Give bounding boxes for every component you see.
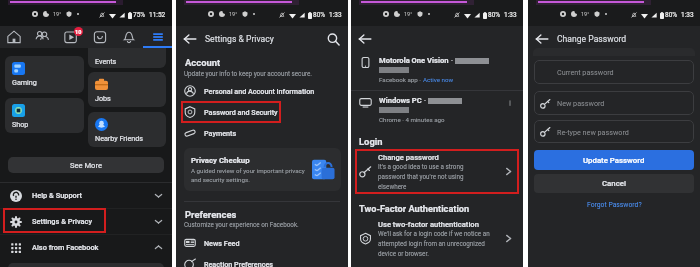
- button[interactable]: Windows PC: [359, 96, 515, 123]
- button[interactable]: See More: [8, 157, 164, 173]
- staticText: News Feed: [204, 239, 240, 247]
- staticText: Account: [185, 57, 221, 68]
- button[interactable]: Help & Support: [0, 183, 172, 208]
- button[interactable]: Marketplace: [85, 26, 114, 48]
- staticText: Payments: [204, 129, 237, 137]
- staticText: Use two-factor authentication: [378, 220, 479, 229]
- button[interactable]: Search: [327, 33, 340, 46]
- staticText: Jobs: [95, 94, 111, 102]
- staticText: Privacy Checkup: [191, 156, 250, 165]
- staticText: 11:52: [149, 11, 166, 19]
- button[interactable]: Payments: [184, 122, 356, 144]
- staticText: Login: [359, 136, 383, 147]
- staticText: Reaction Preferences: [204, 260, 274, 267]
- button[interactable]: Cancel: [534, 174, 694, 193]
- button[interactable]: Back: [183, 32, 197, 46]
- staticText: Preferences: [185, 209, 237, 220]
- staticText: 80%: [313, 11, 326, 19]
- button[interactable]: News Feed: [184, 232, 356, 254]
- staticText: Facebook app ·: [379, 76, 423, 83]
- button[interactable]: Change password: [359, 153, 515, 190]
- button[interactable]: Password and Security: [184, 101, 356, 123]
- button[interactable]: Watch: [56, 26, 85, 48]
- button[interactable]: Motorola One Vision: [359, 56, 515, 83]
- button[interactable]: Current password: [534, 60, 694, 84]
- staticText: Help & Support: [32, 191, 154, 200]
- staticText: New password: [557, 99, 605, 107]
- staticText: Customize your experience on Facebook.: [184, 221, 299, 228]
- staticText: ·: [422, 96, 428, 105]
- button[interactable]: Home: [0, 26, 28, 48]
- staticText: 75%: [133, 11, 146, 19]
- staticText: Cancel: [602, 179, 626, 188]
- staticText: Chrome · 4 minutes ago: [379, 116, 445, 123]
- button[interactable]: Friends: [28, 26, 56, 48]
- staticText: Also from Facebook: [32, 243, 154, 252]
- staticText: It's a good idea to use a strong passwor…: [378, 163, 479, 190]
- staticText: Password and Security: [204, 108, 278, 116]
- staticText: 80%: [488, 11, 501, 19]
- button[interactable]: Events: [88, 48, 166, 68]
- button[interactable]: Shop: [5, 98, 84, 133]
- staticText: Gaming: [12, 78, 37, 86]
- button[interactable]: Personal and Account Information: [184, 80, 356, 102]
- staticText: See More: [70, 161, 102, 170]
- staticText: Settings & Privacy: [32, 217, 154, 226]
- button[interactable]: New password: [534, 91, 694, 115]
- staticText: Two-Factor Authentication: [359, 203, 470, 214]
- button[interactable]: Notifications: [114, 26, 143, 48]
- staticText: 19°: [404, 11, 413, 17]
- staticText: Personal and Account Information: [204, 87, 315, 95]
- staticText: 80%: [665, 11, 678, 19]
- button[interactable]: Back: [535, 32, 549, 46]
- button[interactable]: Nearby Friends: [88, 112, 166, 147]
- staticText: 1:33: [681, 11, 694, 19]
- button[interactable]: Back: [358, 32, 372, 46]
- button[interactable]: Privacy Checkup: [184, 148, 341, 191]
- staticText: Events: [95, 57, 117, 65]
- button[interactable]: Forgot Password?: [534, 198, 694, 212]
- staticText: Current password: [557, 68, 614, 76]
- button[interactable]: Menu: [143, 26, 172, 48]
- staticText: 1:33: [329, 11, 342, 19]
- staticText: Update your info to keep your account se…: [184, 70, 312, 77]
- staticText: 19°: [229, 11, 238, 17]
- staticText: Re-type new password: [557, 128, 629, 136]
- staticText: A guided review of your important privac…: [191, 167, 308, 184]
- staticText: Update Password: [583, 156, 645, 165]
- staticText: 1:33: [504, 11, 517, 19]
- staticText: Windows PC: [379, 96, 422, 105]
- staticText: Change Password: [557, 34, 627, 44]
- button[interactable]: Gaming: [5, 56, 84, 93]
- staticText: Nearby Friends: [95, 134, 144, 142]
- staticText: Motorola One Vision: [379, 56, 449, 65]
- button[interactable]: Reaction Preferences: [184, 253, 356, 267]
- button[interactable]: Jobs: [88, 72, 166, 107]
- button[interactable]: Re-type new password: [534, 120, 694, 143]
- staticText: We'll ask for a login code if we notice …: [378, 230, 500, 257]
- button[interactable]: Update Password: [534, 150, 694, 170]
- staticText: Settings & Privacy: [205, 34, 327, 44]
- staticText: 19°: [53, 11, 62, 17]
- staticText: 10: [75, 29, 82, 35]
- button[interactable]: Also from Facebook: [0, 235, 172, 260]
- staticText: Shop: [12, 120, 29, 128]
- staticText: Forgot Password?: [587, 201, 642, 209]
- staticText: Active now: [423, 76, 454, 83]
- button[interactable]: Settings & Privacy: [0, 209, 172, 234]
- button[interactable]: Use two-factor authentication: [359, 220, 515, 257]
- staticText: ·: [449, 56, 455, 65]
- staticText: 19°: [581, 11, 590, 17]
- staticText: Change password: [378, 153, 439, 162]
